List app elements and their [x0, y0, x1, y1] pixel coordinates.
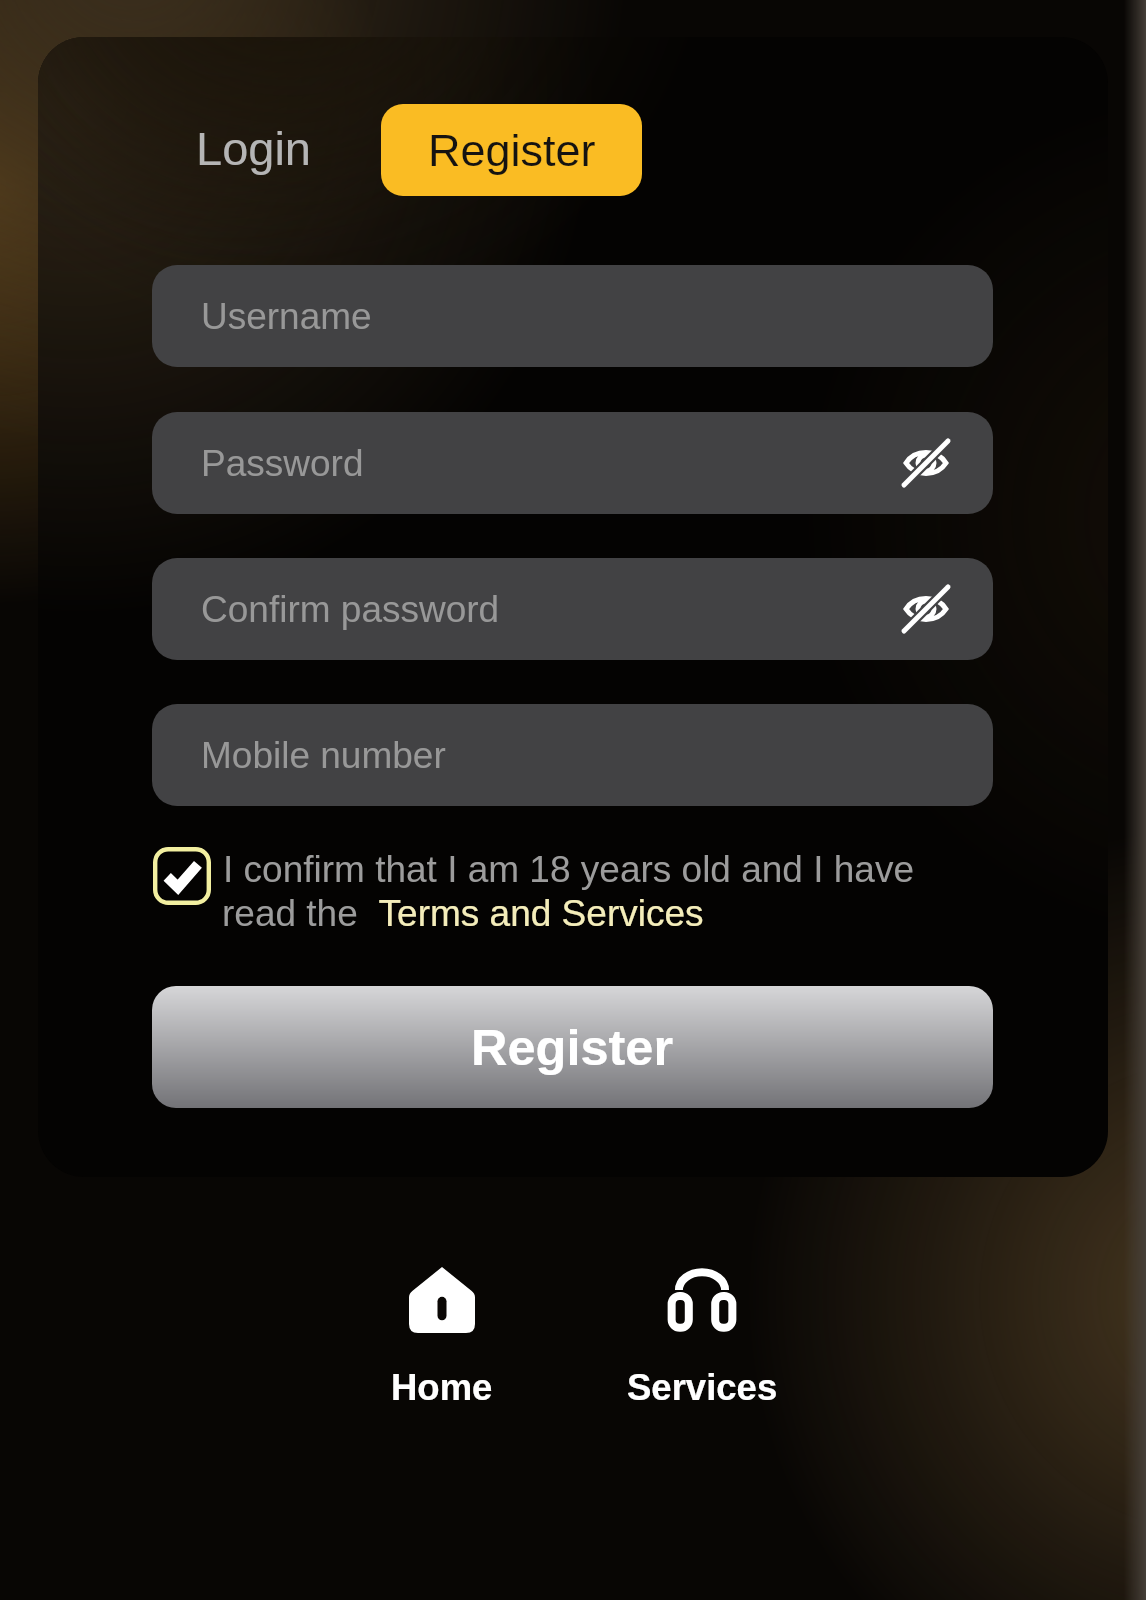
button[interactable]: Password	[152, 412, 993, 514]
staticText: Mobile number	[201, 735, 446, 776]
staticText: Password	[201, 443, 364, 484]
button[interactable]: Register	[152, 986, 993, 1108]
staticText: Home	[391, 1367, 493, 1408]
staticText: Confirm password	[201, 589, 500, 630]
staticText: Register	[471, 1019, 674, 1075]
staticText: Register	[428, 125, 596, 175]
button[interactable]: Home	[292, 1267, 592, 1408]
button[interactable]: Toggle password visibility	[896, 579, 956, 639]
button[interactable]: Login	[196, 122, 311, 175]
button[interactable]: Terms and Services	[369, 893, 704, 934]
button[interactable]: Toggle password visibility	[896, 433, 956, 493]
button[interactable]: Confirm password	[152, 558, 993, 660]
button[interactable]: Username	[152, 265, 993, 367]
button[interactable]: I confirm that I am 18 years old	[153, 847, 211, 905]
button[interactable]: Mobile number	[152, 704, 993, 806]
staticText: Login	[196, 122, 311, 175]
staticText: read the	[222, 893, 369, 934]
button[interactable]: Register	[381, 104, 642, 196]
staticText: I confirm that I am 18 years old and I h…	[223, 849, 915, 890]
staticText: Username	[201, 296, 372, 337]
button[interactable]: Services	[552, 1267, 852, 1408]
staticText: Services	[627, 1367, 778, 1408]
